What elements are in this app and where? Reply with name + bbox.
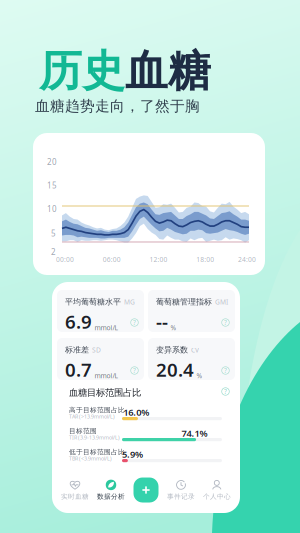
button[interactable]: 数据分析 [93,477,129,503]
staticText: 20 [47,156,57,167]
staticText: 变异系数 [156,345,188,355]
staticText: TAR (>13.9mmol/L) [69,413,115,420]
staticText: 高于目标范围占比 [69,406,125,414]
staticText: 数据分析 [97,492,125,501]
staticText: 标准差 [65,345,89,355]
button[interactable]: 标准差 [57,338,144,380]
staticText: 15 [47,180,57,191]
staticText: 葡萄糖管理指标 [156,297,212,307]
staticText: 10 [47,203,57,214]
button[interactable]: 事件记录 [163,477,199,503]
staticText: 0.7 [65,357,92,382]
staticText: TBR (<3.9mmol/L) [69,455,112,462]
staticText: 5 [51,228,56,239]
button[interactable]: 说明 [221,387,230,396]
staticText: 历史 [39,45,125,97]
staticText: % [170,323,176,332]
staticText: mmol/L [94,323,117,332]
staticText: 血糖目标范围占比 [69,387,141,398]
button[interactable]: 葡萄糖管理指标 [148,290,235,332]
button[interactable]: 说明 [130,366,139,375]
staticText: mmol/L [94,371,117,380]
staticText: 74.1% [181,427,207,439]
staticText: ? [224,318,227,327]
staticText: 18:00 [196,255,214,264]
staticText: ? [224,366,227,375]
staticText: ? [133,366,136,375]
staticText: 实时血糖 [61,492,89,501]
staticText: SD [92,346,101,354]
staticText: % [196,371,202,380]
staticText: 低于目标范围占比 [69,448,125,456]
staticText: MG [124,298,135,306]
button[interactable]: 说明 [221,318,230,327]
staticText: 24:00 [238,255,256,264]
staticText: 平均葡萄糖水平 [65,297,121,307]
button[interactable]: 变异系数 [148,338,235,380]
staticText: CV [191,346,199,354]
button[interactable]: 实时血糖 [57,477,93,503]
staticText: 12:00 [149,255,167,264]
staticText: 血糖趋势走向，了然于胸 [35,97,200,115]
button[interactable]: 添加记录 [129,476,163,504]
staticText: 06:00 [103,255,121,264]
button[interactable]: 平均葡萄糖水平 [57,290,144,332]
staticText: TIR (3.9-13.9mmol/L) [69,434,120,441]
staticText: ? [133,318,136,327]
staticText: 6.9 [65,309,92,334]
staticText: 事件记录 [167,492,195,501]
staticText: 目标范围 [69,427,97,435]
staticText: GMI [215,298,228,306]
staticText: -- [156,309,168,334]
button[interactable]: 说明 [221,366,230,375]
staticText: 2 [51,246,56,257]
staticText: 00:00 [56,255,74,264]
staticText: 血糖 [125,45,211,97]
staticText: 16.0% [123,406,149,418]
staticText: 5.9% [122,448,143,460]
button[interactable]: 说明 [130,318,139,327]
staticText: ? [224,387,227,396]
staticText: 20.4 [156,357,194,382]
staticText: 个人中心 [203,492,231,501]
button[interactable]: 个人中心 [199,477,235,503]
